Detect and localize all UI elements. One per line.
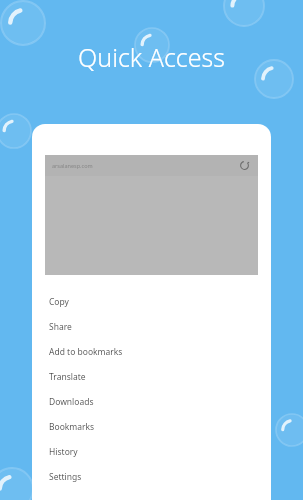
staticText: Quick Access bbox=[78, 40, 225, 74]
button[interactable]: Reload page bbox=[238, 159, 251, 172]
staticText: Copy bbox=[49, 296, 69, 308]
button[interactable]: Downloads bbox=[32, 389, 271, 414]
button[interactable]: Share bbox=[32, 314, 271, 339]
staticText: Settings bbox=[49, 471, 82, 483]
button[interactable]: Bookmarks bbox=[32, 414, 271, 439]
staticText: Share bbox=[49, 321, 72, 333]
button[interactable]: arsalanesp.com bbox=[45, 155, 258, 176]
staticText: Add to bookmarks bbox=[49, 346, 123, 358]
staticText: arsalanesp.com bbox=[52, 162, 93, 169]
button[interactable]: Add to bookmarks bbox=[32, 339, 271, 364]
button[interactable]: History bbox=[32, 439, 271, 464]
staticText: Translate bbox=[49, 371, 86, 383]
button[interactable]: Settings bbox=[32, 464, 271, 489]
button[interactable]: Copy bbox=[32, 289, 271, 314]
staticText: History bbox=[49, 446, 78, 458]
button[interactable]: Translate bbox=[32, 364, 271, 389]
staticText: Downloads bbox=[49, 396, 94, 408]
staticText: Bookmarks bbox=[49, 421, 95, 433]
